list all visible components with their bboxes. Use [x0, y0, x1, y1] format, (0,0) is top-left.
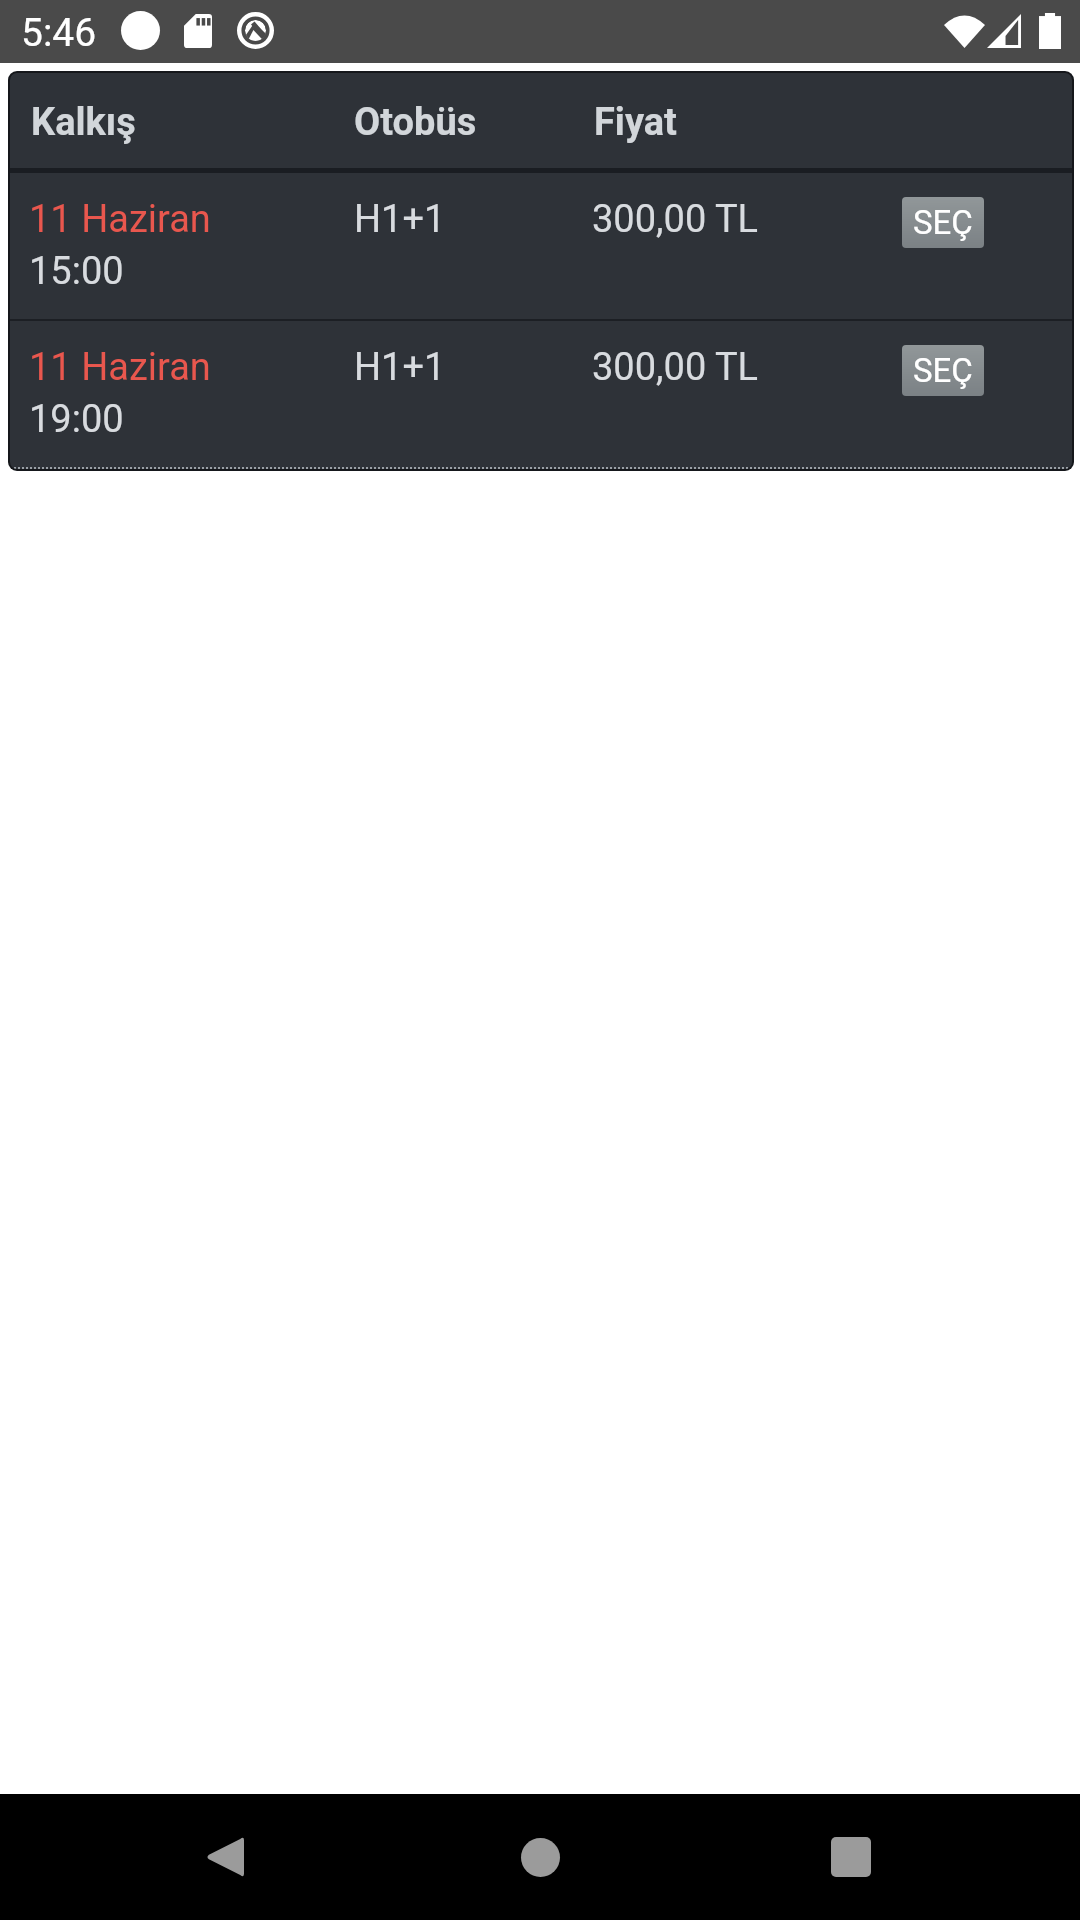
staticText: 19:00	[29, 397, 124, 442]
button[interactable]: SEÇ	[902, 197, 984, 248]
button[interactable]: 11 Haziran	[10, 321, 1072, 467]
staticText: Fiyat	[594, 100, 677, 145]
staticText: H1+1	[354, 197, 446, 242]
staticText: Otobüs	[354, 100, 477, 145]
staticText: SEÇ	[913, 203, 973, 242]
button[interactable]: Recents	[791, 1794, 911, 1920]
button[interactable]: SEÇ	[902, 345, 984, 396]
staticText: SEÇ	[913, 351, 973, 390]
button[interactable]: Home	[480, 1794, 600, 1920]
staticText: Kalkış	[31, 100, 136, 145]
staticText: 15:00	[29, 249, 124, 294]
staticText: 5:46	[21, 10, 97, 56]
staticText: H1+1	[354, 345, 446, 390]
staticText: 11 Haziran	[29, 345, 211, 390]
button[interactable]: 11 Haziran	[10, 173, 1072, 319]
staticText: 300,00 TL	[592, 197, 759, 242]
button[interactable]: Back	[165, 1794, 285, 1920]
staticText: 11 Haziran	[29, 197, 211, 242]
staticText: 300,00 TL	[592, 345, 759, 390]
